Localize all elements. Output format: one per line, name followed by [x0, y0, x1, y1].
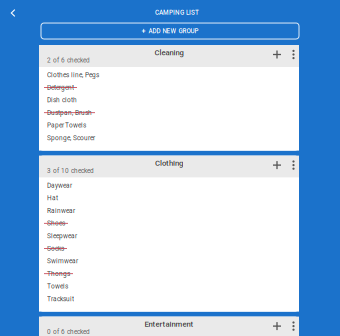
button[interactable]: Swimwear: [44, 255, 294, 267]
button[interactable]: Sleepwear: [44, 230, 294, 242]
button[interactable]: Towels: [44, 280, 294, 293]
button[interactable]: Shoes: [44, 217, 294, 230]
button[interactable]: Rainwear: [44, 204, 294, 217]
staticText: Thongs: [47, 270, 70, 278]
button[interactable]: Add item to Clothing: [267, 154, 287, 176]
staticText: Dustpan, Brush: [47, 109, 92, 117]
staticText: Cleaning: [154, 48, 183, 57]
button[interactable]: Detergent: [44, 81, 294, 94]
staticText: Clothing: [155, 159, 183, 168]
staticText: Detergent: [47, 84, 74, 91]
staticText: Daywear: [47, 182, 72, 189]
staticText: Paper Towels: [47, 121, 86, 129]
button[interactable]: Daywear: [44, 179, 294, 192]
staticText: Shoes: [47, 219, 65, 227]
button[interactable]: Paper Towels: [44, 119, 294, 132]
staticText: Clothes line, Pegs: [47, 71, 99, 79]
button[interactable]: Cleaning options: [287, 43, 300, 65]
staticText: ADD NEW GROUP: [148, 27, 198, 35]
button[interactable]: Clothing options: [287, 154, 300, 176]
button[interactable]: Socks: [44, 242, 294, 255]
staticText: Rainwear: [47, 207, 75, 215]
staticText: Tracksuit: [47, 295, 74, 303]
staticText: Towels: [47, 282, 68, 290]
button[interactable]: Hat: [44, 192, 294, 204]
button[interactable]: Dish cloth: [44, 94, 294, 106]
staticText: CAMPING LIST: [155, 9, 199, 16]
button[interactable]: Thongs: [44, 267, 294, 280]
button[interactable]: Entertainment options: [287, 315, 300, 336]
staticText: 2 of 6 checked: [47, 56, 90, 64]
button[interactable]: +: [41, 23, 299, 39]
button[interactable]: Sponge, Scourer: [44, 132, 294, 144]
staticText: Swimwear: [47, 257, 78, 265]
staticText: Dish cloth: [47, 96, 77, 104]
staticText: 3 of 10 checked: [47, 167, 94, 175]
staticText: 0 of 6 checked: [47, 328, 90, 336]
staticText: Entertainment: [144, 320, 193, 329]
button[interactable]: Add item to Entertainment: [267, 315, 287, 336]
button[interactable]: Add item to Cleaning: [267, 43, 287, 65]
staticText: +: [141, 27, 145, 35]
button[interactable]: Clothes line, Pegs: [44, 69, 294, 81]
button[interactable]: Back: [0, 0, 26, 26]
button[interactable]: Dustpan, Brush: [44, 106, 294, 119]
staticText: Socks: [47, 245, 64, 252]
staticText: Sponge, Scourer: [47, 134, 95, 142]
button[interactable]: Tracksuit: [44, 293, 294, 305]
staticText: Sleepwear: [47, 232, 77, 240]
staticText: Hat: [47, 194, 58, 202]
